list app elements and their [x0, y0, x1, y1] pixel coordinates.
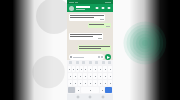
button[interactable]: Key: [93, 80, 97, 86]
button[interactable]: Key: [78, 80, 82, 86]
button[interactable]: Call: [101, 6, 105, 10]
button[interactable]: Key: [81, 87, 99, 93]
button[interactable]: Contact avatar: [69, 6, 74, 11]
button[interactable]: Key: [88, 66, 92, 72]
button[interactable]: Key: [76, 87, 80, 93]
button[interactable]: [88, 23, 111, 28]
button[interactable]: Key: [93, 66, 97, 72]
button[interactable]: Home: [88, 95, 92, 99]
button[interactable]: Send: [105, 54, 111, 60]
button[interactable]: Key: [76, 66, 79, 72]
button[interactable]: [78, 45, 111, 51]
button[interactable]: Key: [84, 66, 87, 72]
button[interactable]: Key: [83, 80, 87, 86]
button[interactable]: Key: [98, 80, 102, 86]
button[interactable]: Key: [100, 87, 104, 93]
button[interactable]: Key: [80, 66, 83, 72]
button[interactable]: Recents: [101, 95, 105, 99]
button[interactable]: Back: [76, 95, 80, 99]
button[interactable]: Key: [68, 80, 72, 86]
button[interactable]: [69, 54, 104, 60]
button[interactable]: Key: [88, 80, 92, 86]
button[interactable]: Key: [78, 73, 82, 79]
button[interactable]: Key: [68, 73, 72, 79]
button[interactable]: Key: [108, 80, 112, 86]
button[interactable]: Key: [83, 73, 87, 79]
button[interactable]: Key: [103, 73, 107, 79]
button[interactable]: [69, 33, 103, 40]
button[interactable]: Key: [108, 73, 112, 79]
button[interactable]: Key: [93, 73, 97, 79]
button[interactable]: Key: [103, 80, 107, 86]
button[interactable]: Key: [73, 73, 77, 79]
button[interactable]: Key: [73, 80, 77, 86]
button[interactable]: Key: [98, 73, 102, 79]
button[interactable]: More options: [107, 6, 111, 10]
button[interactable]: [69, 14, 105, 21]
button[interactable]: Key: [103, 66, 107, 72]
button[interactable]: Key: [88, 73, 92, 79]
button[interactable]: Key: [68, 66, 71, 72]
button[interactable]: Key: [98, 66, 102, 72]
button[interactable]: Video call: [95, 6, 99, 10]
button[interactable]: Key: [108, 66, 112, 72]
button[interactable]: Key: [72, 66, 75, 72]
button[interactable]: Key: [105, 87, 112, 93]
